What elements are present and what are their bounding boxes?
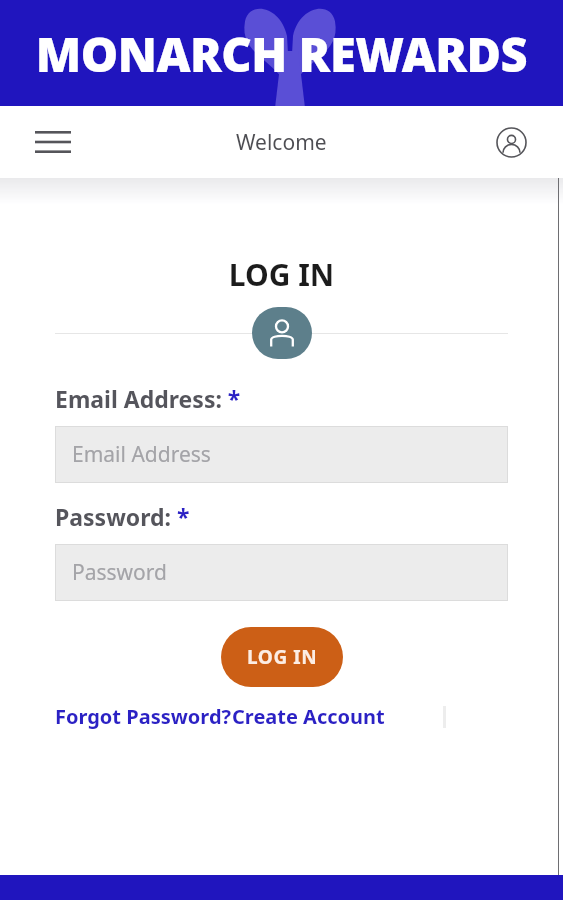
staticText: MONARCH REWARDS — [0, 22, 563, 86]
staticText: Password — [72, 558, 167, 587]
button[interactable]: Password — [55, 544, 508, 601]
button[interactable]: Open navigation menu — [26, 118, 80, 166]
button[interactable]: Account — [489, 120, 533, 164]
staticText: Password: * — [55, 501, 190, 532]
button[interactable]: LOG IN — [221, 627, 343, 687]
staticText: LOG IN — [247, 644, 318, 670]
staticText: LOG IN — [0, 254, 563, 295]
staticText: Email Address — [72, 440, 211, 469]
button[interactable]: Forgot Password? — [55, 703, 232, 730]
staticText: Email Address: * — [55, 383, 241, 414]
staticText: Forgot Password? — [55, 703, 232, 730]
staticText: Welcome — [236, 128, 327, 157]
staticText: Create Account — [232, 703, 385, 730]
button[interactable]: Email Address — [55, 426, 508, 483]
button[interactable]: Create Account — [232, 703, 385, 730]
